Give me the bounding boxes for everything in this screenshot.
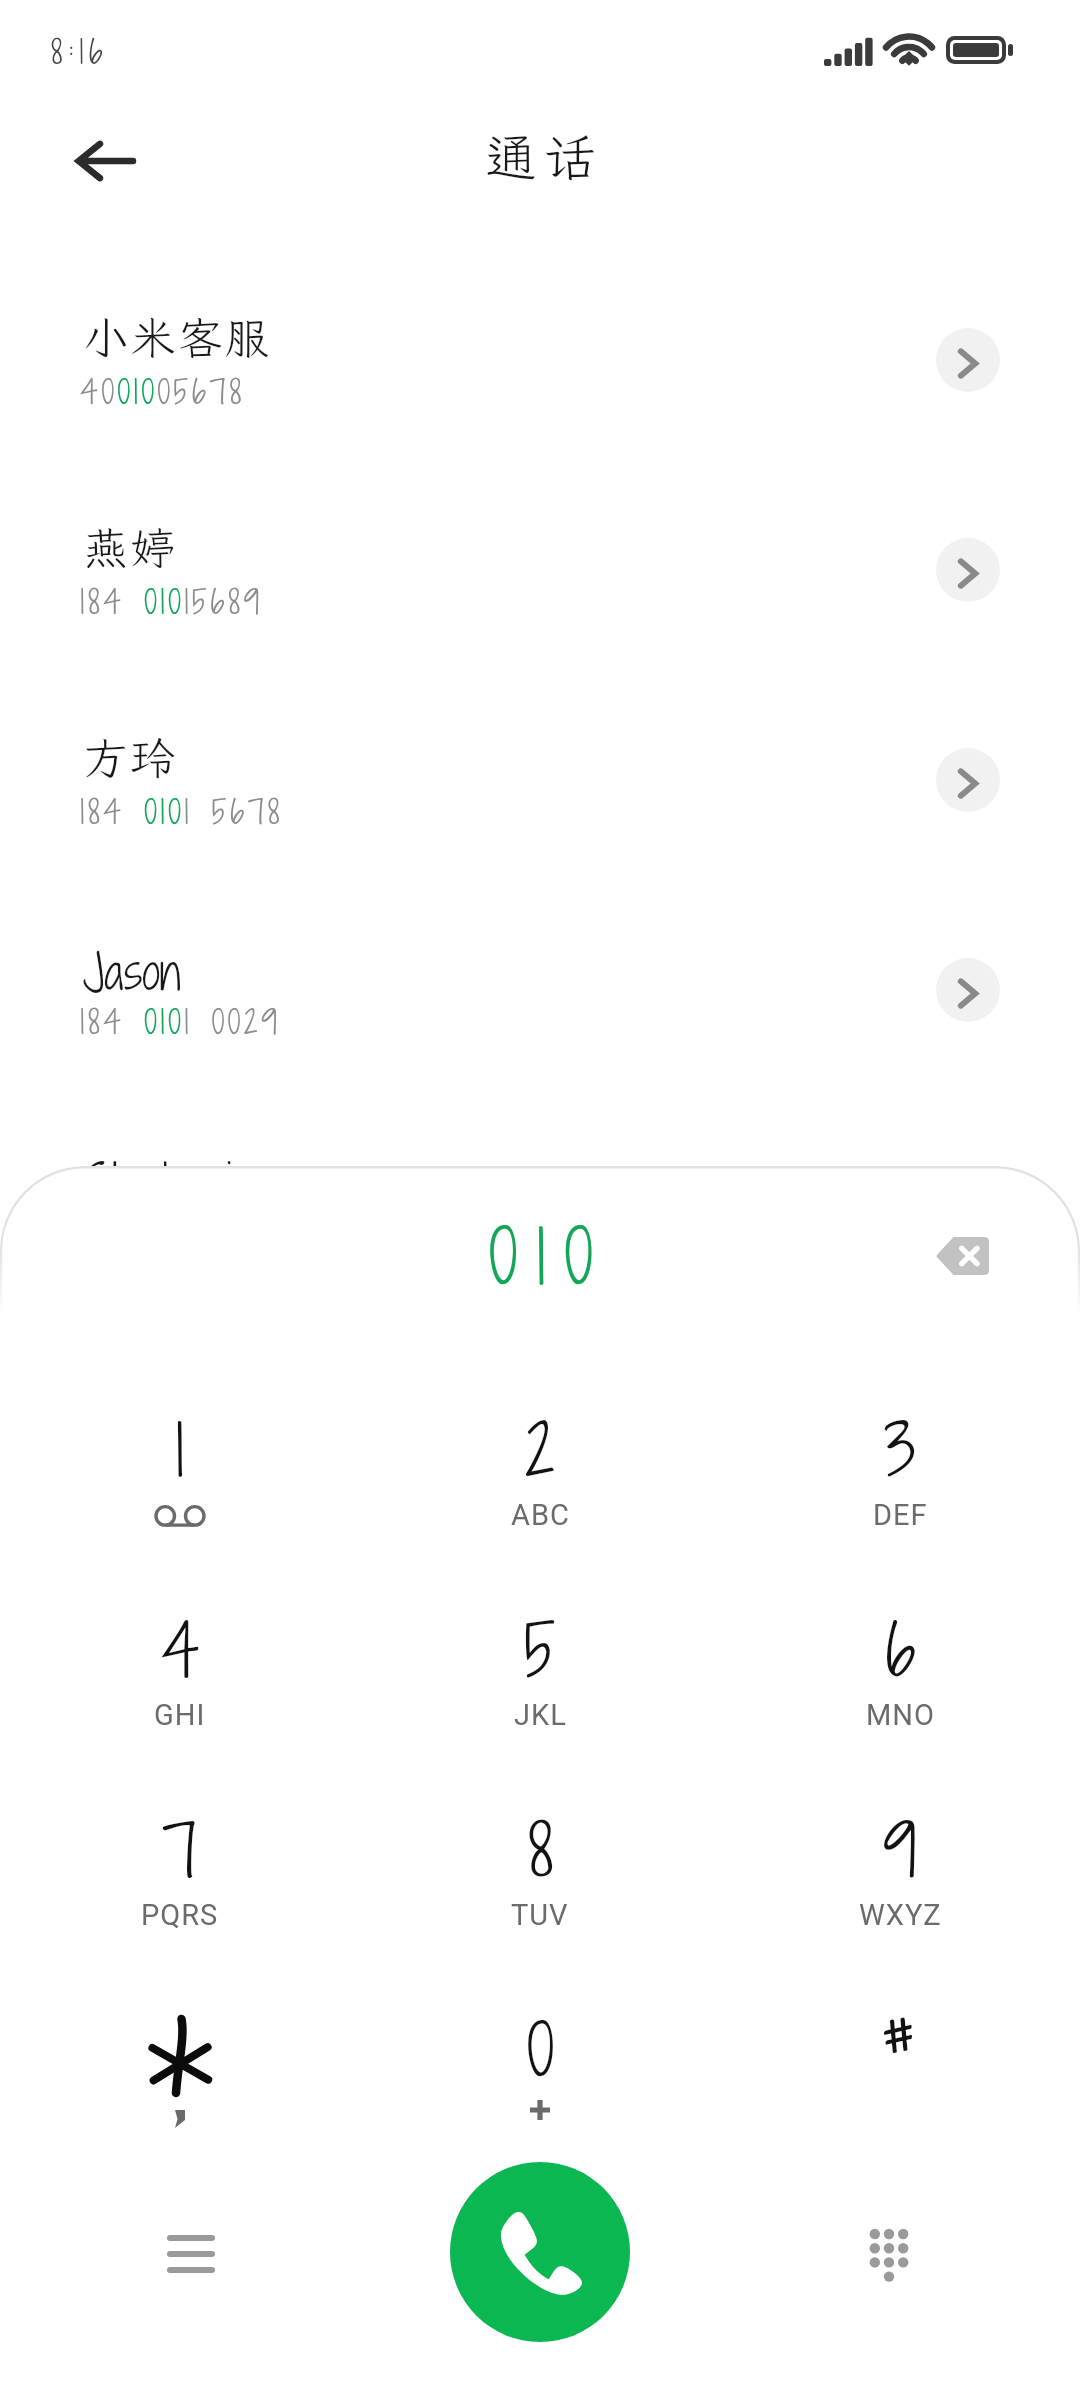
button[interactable]: Contact details bbox=[936, 748, 1000, 812]
button[interactable]: Stephanie bbox=[0, 1136, 1080, 1346]
button[interactable]: Call bbox=[450, 2162, 630, 2342]
button[interactable]: Call log bbox=[136, 2199, 246, 2309]
staticText: JKL bbox=[514, 1698, 567, 1732]
button[interactable]: 3 bbox=[720, 1394, 1080, 1594]
staticText: 4 bbox=[161, 1600, 200, 1700]
staticText: 9 bbox=[883, 1800, 917, 1900]
staticText: 184 01015689 bbox=[80, 578, 263, 624]
button[interactable]: Contact details bbox=[936, 958, 1000, 1022]
staticText: 2 bbox=[525, 1400, 556, 1500]
staticText: GHI bbox=[154, 1698, 206, 1732]
staticText: TUV bbox=[511, 1898, 569, 1932]
button[interactable]: # bbox=[720, 1994, 1080, 2194]
button[interactable]: 2 bbox=[360, 1394, 720, 1594]
staticText: DEF bbox=[873, 1498, 928, 1532]
staticText: 0 bbox=[527, 2000, 554, 2100]
staticText: Jason bbox=[83, 939, 181, 1006]
staticText: ABC bbox=[511, 1498, 570, 1532]
staticText: 7 bbox=[162, 1800, 198, 1900]
button[interactable]: Keypad bbox=[834, 2200, 944, 2310]
staticText: Stephanie bbox=[83, 1149, 254, 1216]
button[interactable]: 燕婷 bbox=[0, 506, 1080, 716]
button[interactable]: Backspace bbox=[903, 1206, 1021, 1306]
staticText: 1 bbox=[175, 1400, 185, 1500]
staticText: # bbox=[879, 1988, 922, 2088]
button[interactable]: Contact details bbox=[936, 538, 1000, 602]
staticText: 8 bbox=[528, 1800, 553, 1900]
button[interactable] bbox=[0, 1994, 360, 2194]
staticText: MNO bbox=[866, 1698, 935, 1732]
button[interactable]: 9 bbox=[720, 1794, 1080, 1994]
staticText: 小米客服 bbox=[83, 308, 272, 367]
staticText: 通话 bbox=[485, 122, 602, 190]
staticText: 184 0101 0029 bbox=[80, 998, 281, 1044]
button[interactable]: 6 bbox=[720, 1594, 1080, 1794]
button[interactable]: Jason bbox=[0, 926, 1080, 1136]
button[interactable]: 方玲 bbox=[0, 716, 1080, 926]
staticText: 184 0101 5678 bbox=[80, 788, 283, 834]
staticText: 6 bbox=[885, 1600, 916, 1700]
staticText: 方玲 bbox=[83, 728, 178, 787]
staticText: 010 bbox=[489, 1204, 612, 1308]
button[interactable]: 4 bbox=[0, 1594, 360, 1794]
button[interactable]: Contact details bbox=[936, 328, 1000, 392]
staticText: 5 bbox=[524, 1600, 556, 1700]
staticText: 4001005678 bbox=[80, 368, 245, 414]
staticText: 燕婷 bbox=[83, 518, 178, 577]
button[interactable]: Back bbox=[45, 111, 165, 211]
button[interactable]: 5 bbox=[360, 1594, 720, 1794]
staticText: 3 bbox=[884, 1400, 916, 1500]
staticText: WXYZ bbox=[859, 1898, 942, 1932]
button[interactable]: 7 bbox=[0, 1794, 360, 1994]
button[interactable]: 0 bbox=[360, 1994, 720, 2194]
button[interactable]: 8 bbox=[360, 1794, 720, 1994]
staticText: PQRS bbox=[141, 1898, 219, 1932]
staticText: 8:16 bbox=[51, 29, 109, 74]
button[interactable]: 1 bbox=[0, 1394, 360, 1594]
button[interactable]: 小米客服 bbox=[0, 296, 1080, 506]
